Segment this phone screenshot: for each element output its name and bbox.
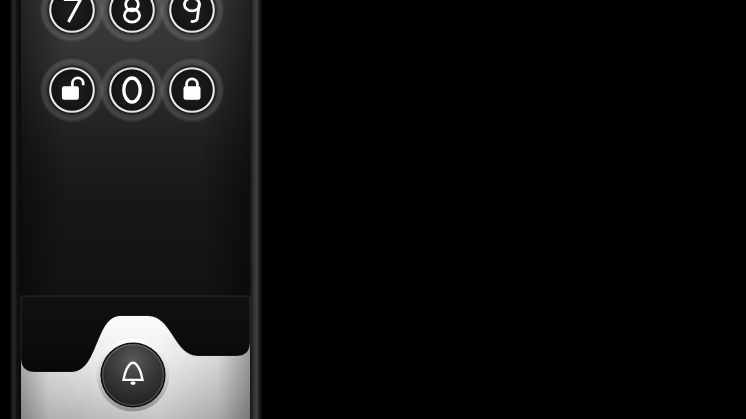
button[interactable]: 9 [169,0,216,34]
button[interactable]: 0 [109,67,156,114]
button[interactable]: 8 [109,0,156,34]
button[interactable]: Doorbell [102,344,164,406]
button[interactable]: Unlock [49,67,96,114]
button[interactable]: 7 [49,0,96,34]
button[interactable]: Lock [169,67,216,114]
